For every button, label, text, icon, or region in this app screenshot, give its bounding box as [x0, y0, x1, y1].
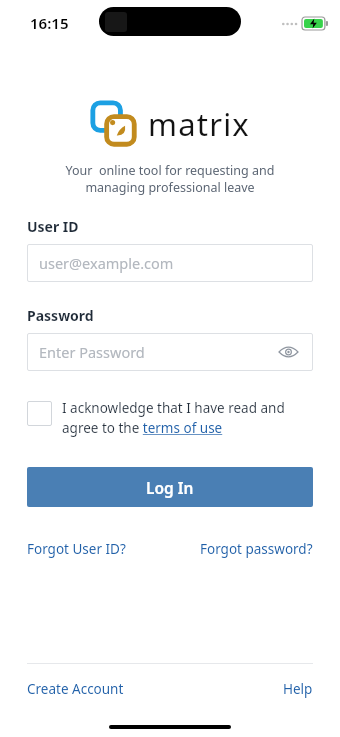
- staticText: Enter Password: [39, 342, 145, 362]
- staticText: matrix: [148, 103, 250, 145]
- button[interactable]: Show password: [275, 339, 301, 365]
- button[interactable]: user@example.com: [27, 244, 313, 282]
- staticText: I acknowledge that I have read and agree…: [62, 399, 285, 437]
- staticText: User ID: [27, 217, 79, 236]
- staticText: Forgot password?: [200, 540, 313, 558]
- staticText: Help: [283, 680, 313, 698]
- button[interactable]: Enter Password: [27, 333, 313, 371]
- button[interactable]: Forgot User ID?: [27, 540, 126, 558]
- staticText: Forgot User ID?: [27, 540, 126, 558]
- staticText: 16:15: [30, 13, 69, 33]
- button[interactable]: Help: [283, 680, 313, 698]
- button[interactable]: Log In: [27, 467, 313, 507]
- staticText: Your online tool for requesting and mana…: [28, 162, 312, 195]
- staticText: Password: [27, 306, 94, 325]
- button[interactable]: Create Account: [27, 680, 124, 698]
- staticText: Log In: [146, 477, 194, 498]
- staticText: Create Account: [27, 680, 124, 698]
- button[interactable]: I acknowledge that I have read and agree…: [27, 399, 313, 437]
- button[interactable]: Forgot password?: [200, 540, 313, 558]
- staticText: user@example.com: [39, 253, 174, 273]
